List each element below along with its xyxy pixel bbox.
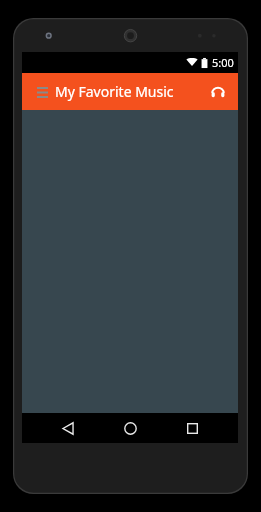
staticText: My Favorite Music <box>55 82 174 101</box>
button[interactable]: Open navigation drawer <box>31 81 53 103</box>
button[interactable]: Recent apps <box>168 413 216 443</box>
button[interactable]: Headphones <box>205 79 231 105</box>
staticText: 5:00 <box>212 55 234 70</box>
button[interactable]: Home <box>106 413 154 443</box>
button[interactable]: Back <box>44 413 92 443</box>
